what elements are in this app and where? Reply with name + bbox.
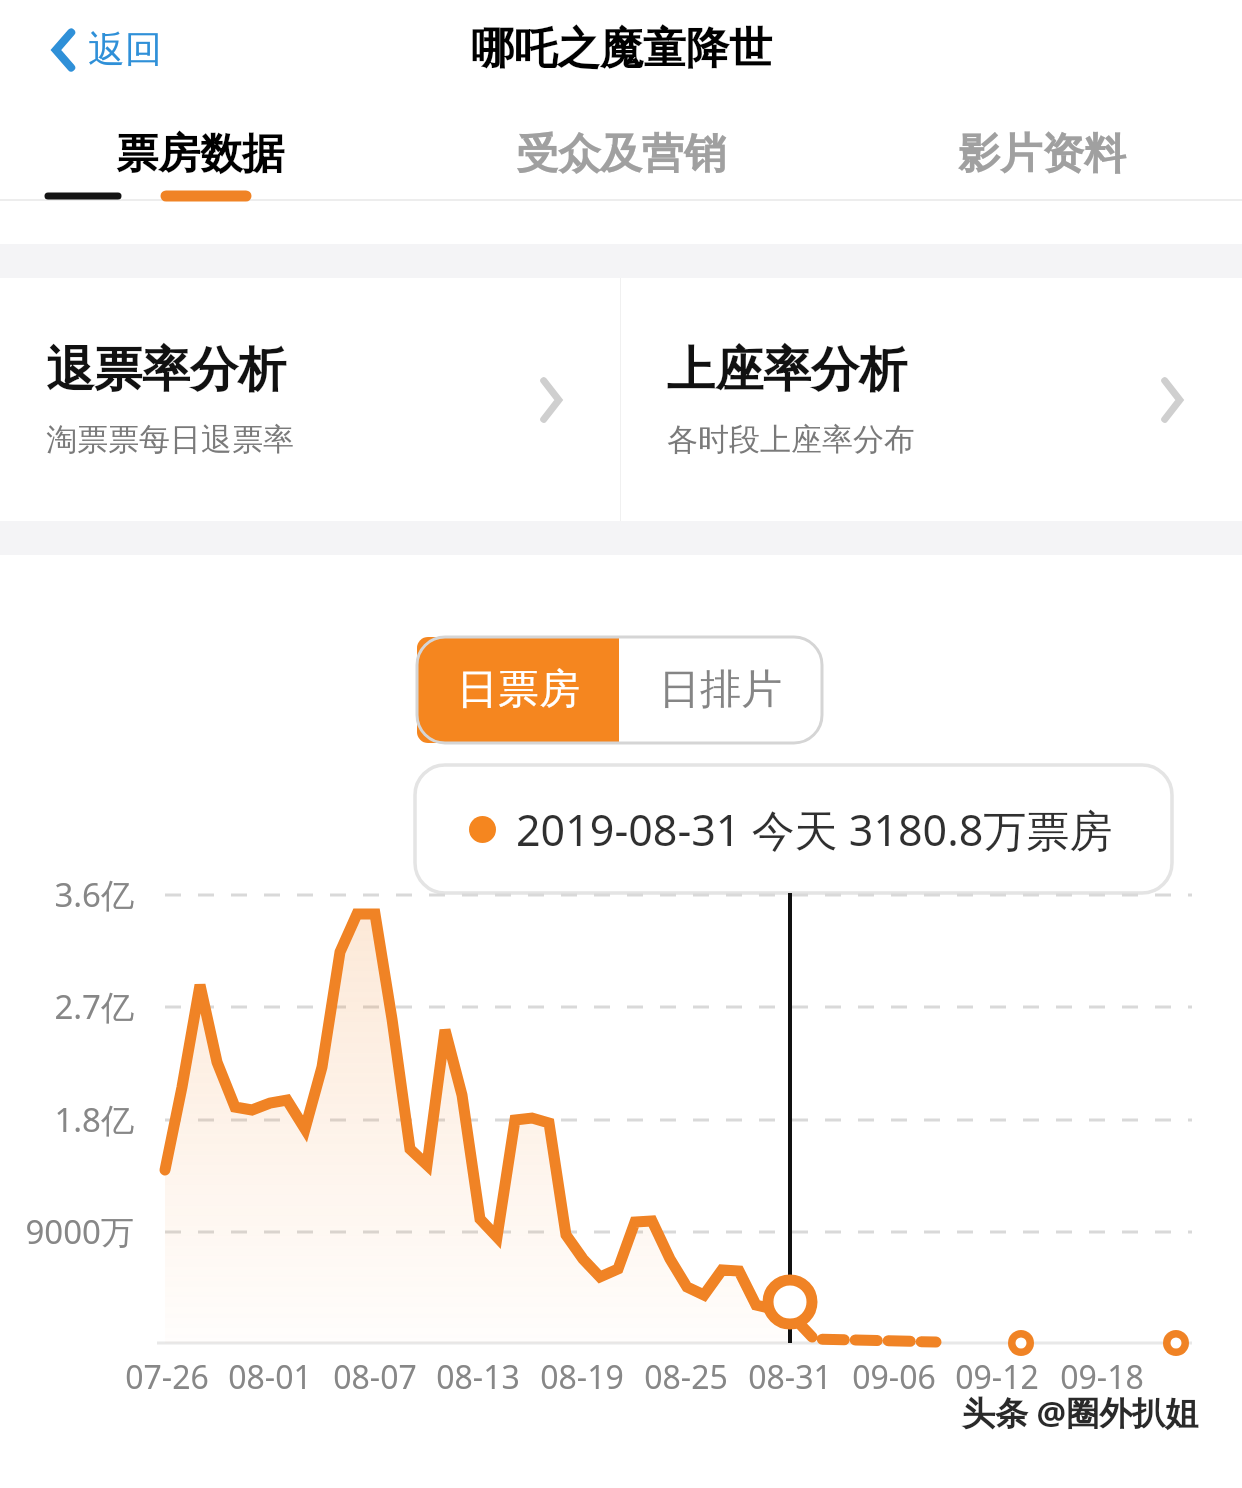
staticText: 影片资料	[958, 128, 1126, 181]
staticText: 3.6亿	[0, 872, 134, 917]
button[interactable]: 日票房	[417, 637, 619, 743]
staticText: 淘票票每日退票率	[46, 420, 294, 459]
staticText: 受众及营销	[516, 128, 726, 181]
staticText: 08-13	[408, 1355, 548, 1399]
staticText: 08-01	[200, 1355, 340, 1399]
button[interactable]: 影片资料	[936, 114, 1148, 195]
button[interactable]: 退票率分析	[0, 278, 620, 521]
button[interactable]: 上座率分析	[621, 278, 1242, 521]
button[interactable]: 返回	[44, 18, 170, 81]
staticText: 08-07	[305, 1355, 445, 1399]
staticText: 票房数据	[116, 128, 284, 181]
staticText: 返回	[88, 26, 162, 73]
staticText: 1.8亿	[0, 1097, 134, 1142]
other: 查看退票率分析	[538, 377, 564, 423]
staticText: 08-19	[512, 1355, 652, 1399]
staticText: 2019-08-31 今天 3180.8万票房	[516, 800, 1113, 859]
staticText: 上座率分析	[667, 340, 907, 400]
button[interactable]: 票房数据	[94, 114, 306, 195]
staticText: 2.7亿	[0, 984, 134, 1029]
staticText: 各时段上座率分布	[667, 420, 915, 459]
button[interactable]: 日排片	[619, 637, 822, 743]
staticText: 退票率分析	[46, 340, 286, 400]
staticText: 日票房	[457, 664, 580, 716]
staticText: 09-12	[927, 1355, 1067, 1399]
staticText: 日排片	[659, 664, 782, 716]
other: 查看上座率分析	[1159, 377, 1185, 423]
staticText: 9000万	[0, 1209, 134, 1254]
staticText: 09-18	[1032, 1355, 1172, 1399]
staticText: 09-06	[824, 1355, 964, 1399]
staticText: 08-31	[720, 1355, 860, 1399]
staticText: 08-25	[616, 1355, 756, 1399]
staticText: 哪吒之魔童降世	[471, 22, 772, 76]
staticText: 头条 @圈外扒姐	[962, 1390, 1199, 1435]
staticText: 07-26	[97, 1355, 237, 1399]
button[interactable]: 受众及营销	[494, 114, 748, 195]
